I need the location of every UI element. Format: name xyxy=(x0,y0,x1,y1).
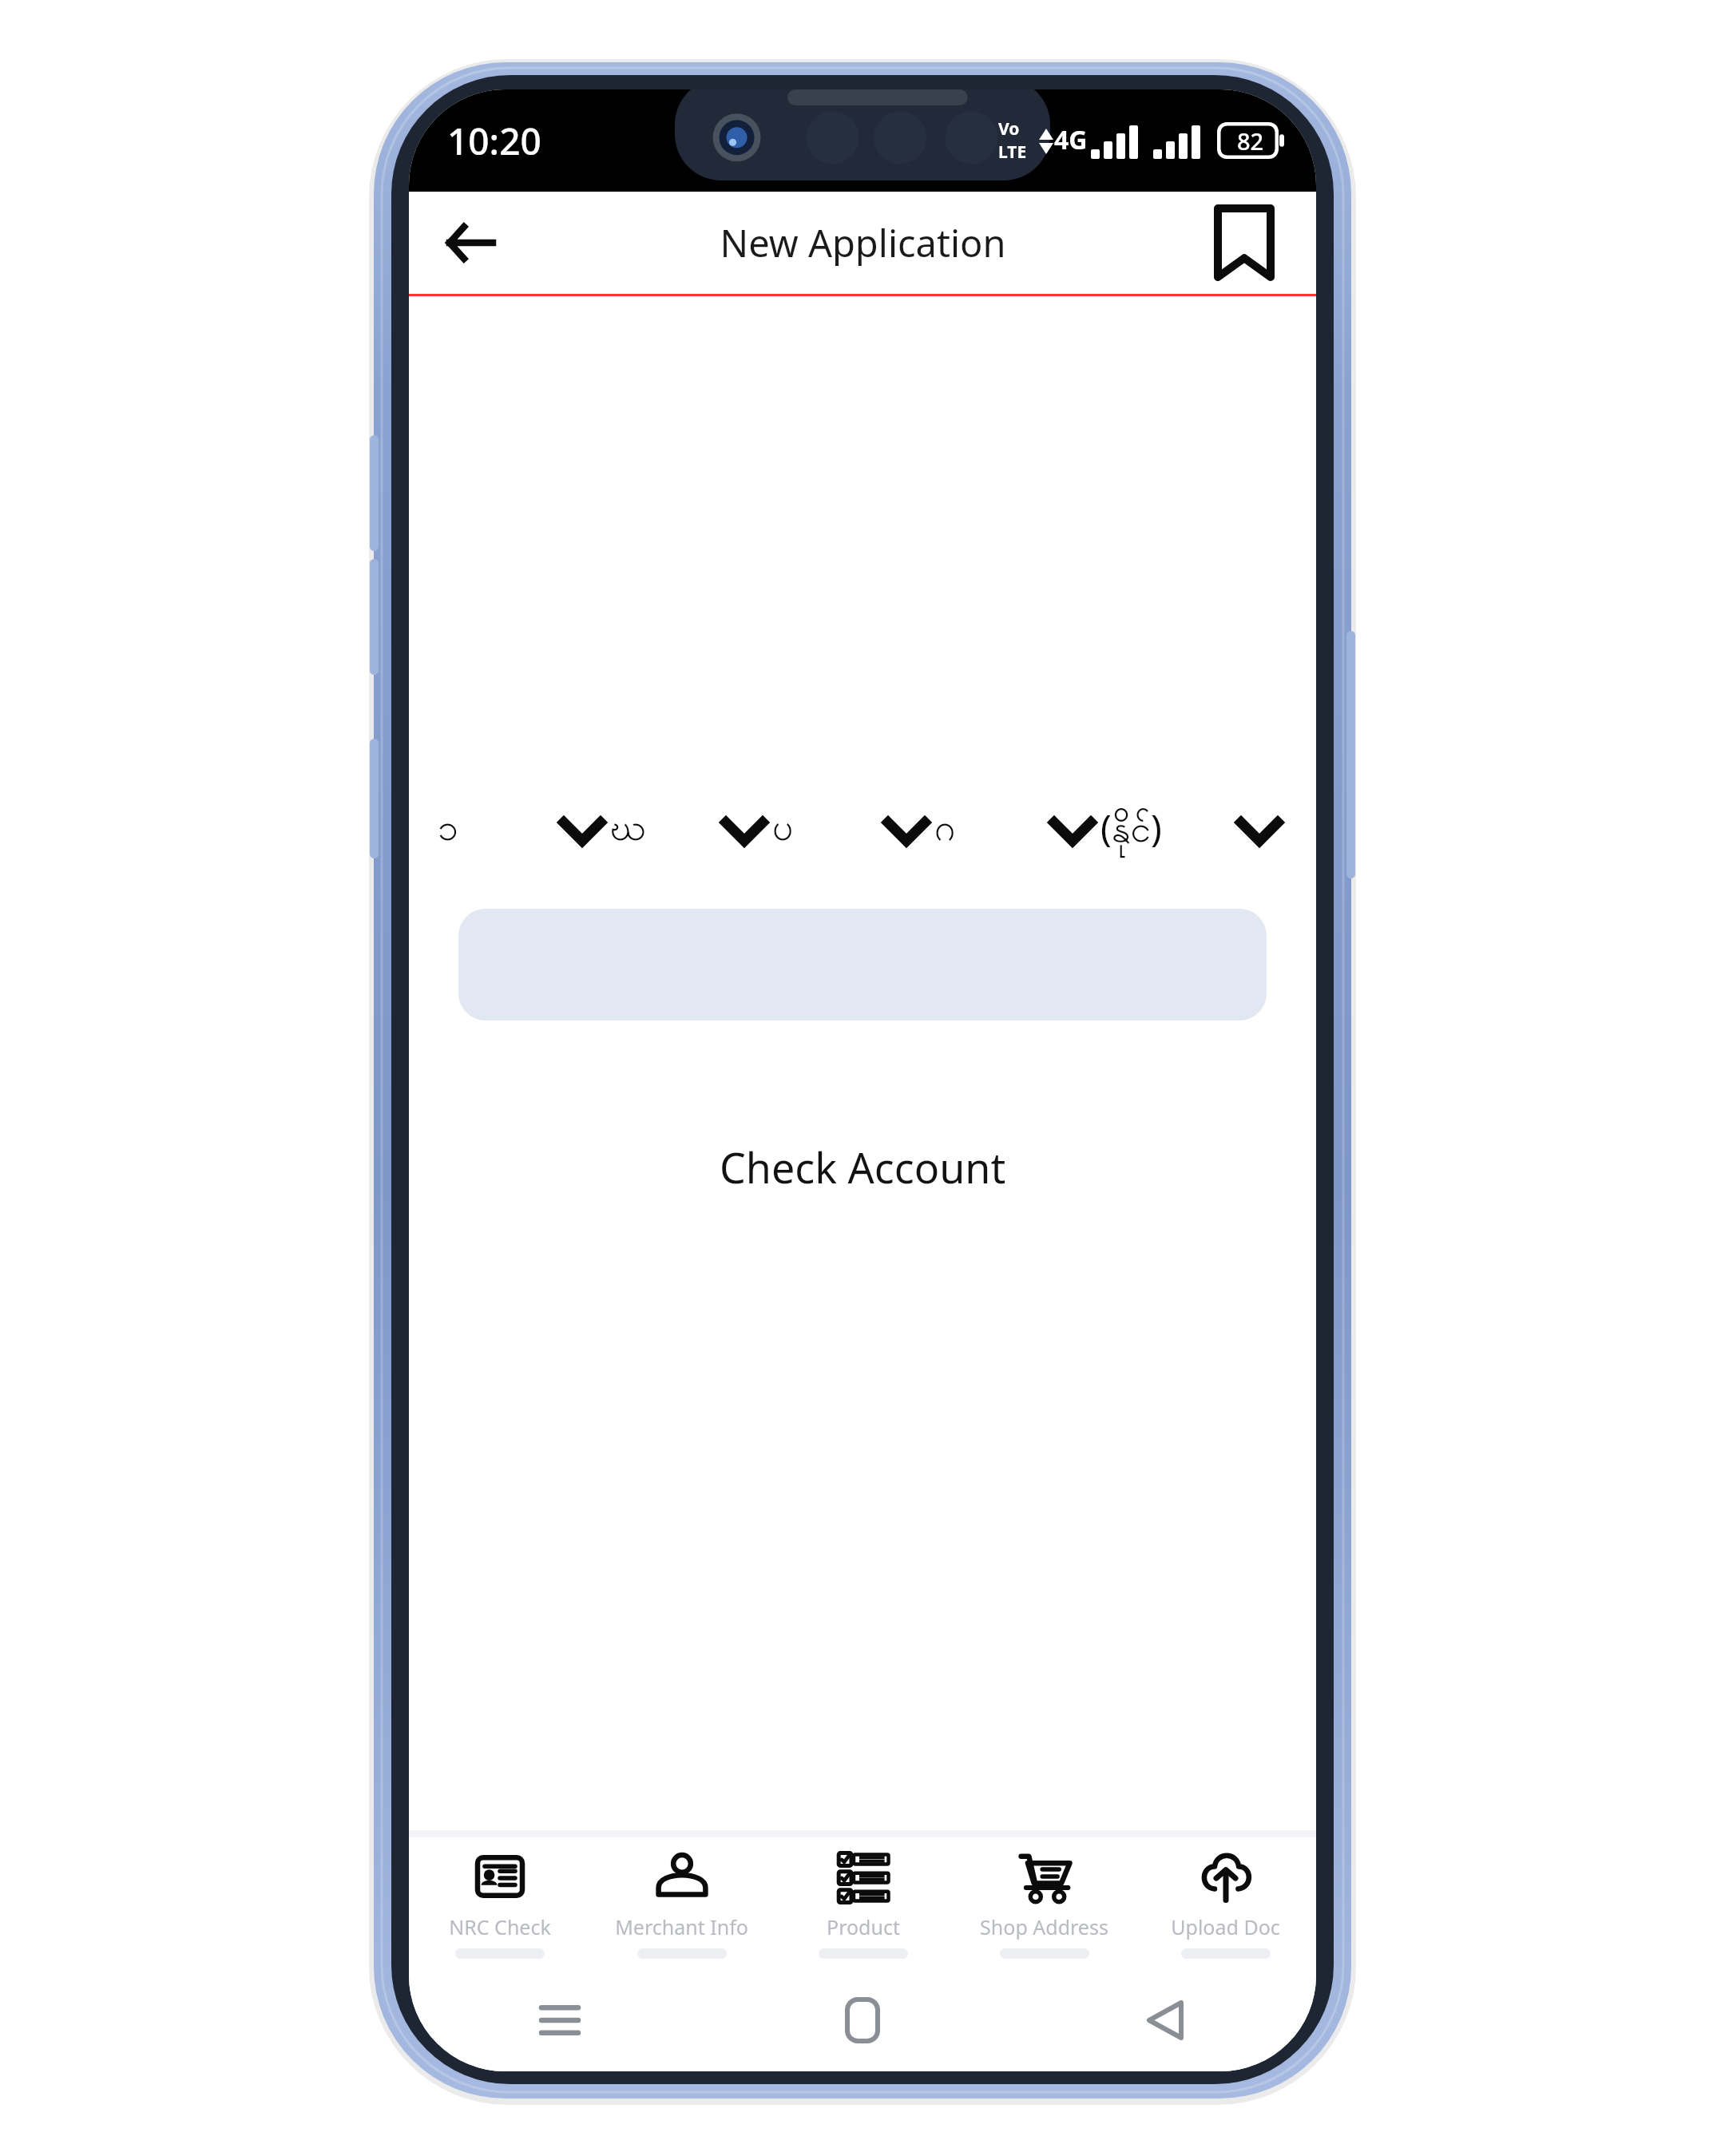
staticText: LTE xyxy=(998,141,1027,164)
button[interactable]: Shop Address xyxy=(954,1837,1135,1969)
staticText: Check Account xyxy=(720,1139,1006,1195)
button[interactable]: ဃ xyxy=(610,787,772,875)
button[interactable]: (နိုင်) xyxy=(1100,787,1287,875)
button[interactable]: Home xyxy=(711,1969,1013,2071)
staticText: 4G xyxy=(1054,122,1088,157)
button[interactable]: Recent apps xyxy=(409,1969,711,2071)
button[interactable]: ဂ xyxy=(934,787,1100,875)
button[interactable]: Product xyxy=(772,1837,954,1969)
button[interactable]: Merchant Info xyxy=(591,1837,772,1969)
staticText: ဃ xyxy=(610,804,646,858)
staticText: (နိုင်) xyxy=(1100,803,1162,860)
staticText: ပ xyxy=(772,804,794,858)
button[interactable]: Back xyxy=(426,199,514,287)
button[interactable]: ၁ xyxy=(438,787,610,875)
staticText: Vo xyxy=(998,117,1020,141)
staticText: ၁ xyxy=(438,804,458,858)
staticText: Shop Address xyxy=(980,1913,1108,1940)
staticText: Merchant Info xyxy=(615,1913,748,1940)
button[interactable]: ပ xyxy=(772,787,934,875)
staticText: NRC Check xyxy=(449,1913,551,1940)
button[interactable]: Bookmark xyxy=(1196,195,1292,291)
staticText: ဂ xyxy=(934,804,956,858)
staticText: New Application xyxy=(720,217,1006,268)
button[interactable]: NRC Check xyxy=(409,1837,591,1969)
button[interactable]: Upload Doc xyxy=(1135,1837,1316,1969)
staticText: 10:20 xyxy=(447,116,541,166)
staticText: 82 xyxy=(1237,125,1264,157)
button[interactable]: Back xyxy=(1013,1969,1316,2071)
button[interactable]: Check Account xyxy=(409,1123,1316,1211)
staticText: Upload Doc xyxy=(1171,1913,1280,1940)
staticText: Product xyxy=(827,1913,900,1940)
